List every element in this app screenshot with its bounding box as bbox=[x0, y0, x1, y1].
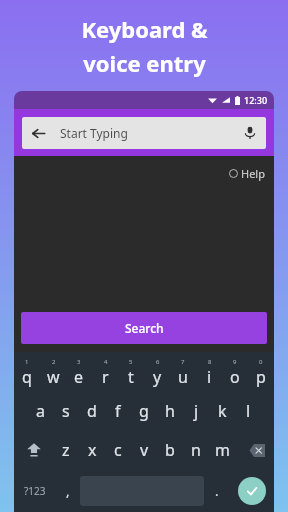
staticText: 3 bbox=[77, 358, 81, 366]
button[interactable]: v bbox=[131, 430, 157, 470]
staticText: k bbox=[218, 400, 227, 422]
button[interactable]: g bbox=[131, 392, 157, 430]
staticText: o bbox=[230, 366, 240, 388]
staticText: q bbox=[22, 366, 32, 388]
button[interactable]: d bbox=[79, 392, 105, 430]
button[interactable]: Voice search bbox=[234, 117, 266, 149]
staticText: l bbox=[246, 400, 251, 422]
button[interactable]: . bbox=[204, 470, 229, 512]
staticText: x bbox=[88, 439, 97, 461]
staticText: b bbox=[165, 439, 175, 461]
staticText: d bbox=[87, 400, 97, 422]
button[interactable]: 2 bbox=[40, 354, 66, 392]
button[interactable]: k bbox=[209, 392, 235, 430]
staticText: 8 bbox=[208, 358, 212, 366]
staticText: t bbox=[128, 366, 134, 388]
button[interactable]: s bbox=[53, 392, 79, 430]
staticText: Search bbox=[125, 320, 164, 336]
button[interactable]: 8 bbox=[196, 354, 222, 392]
button[interactable]: f bbox=[105, 392, 131, 430]
button[interactable]: Shift bbox=[14, 430, 53, 470]
staticText: . bbox=[215, 482, 219, 500]
button[interactable]: ?123 bbox=[14, 470, 55, 512]
staticText: , bbox=[66, 482, 70, 500]
button[interactable]: n bbox=[183, 430, 209, 470]
button[interactable]: Back bbox=[22, 117, 266, 149]
button[interactable]: Back bbox=[22, 117, 54, 149]
staticText: Start Typing bbox=[60, 125, 128, 141]
staticText: 0 bbox=[259, 358, 263, 366]
staticText: h bbox=[165, 400, 175, 422]
button[interactable]: 9 bbox=[222, 354, 248, 392]
staticText: c bbox=[114, 439, 122, 461]
staticText: 1 bbox=[25, 358, 29, 366]
staticText: 6 bbox=[156, 358, 160, 366]
staticText: Help bbox=[241, 166, 265, 181]
button[interactable]: Help bbox=[229, 166, 265, 181]
button[interactable]: x bbox=[79, 430, 105, 470]
button[interactable]: 1 bbox=[14, 354, 40, 392]
staticText: r bbox=[102, 366, 109, 388]
button[interactable]: Enter bbox=[238, 477, 266, 505]
staticText: a bbox=[36, 400, 45, 422]
staticText: 7 bbox=[181, 358, 185, 366]
button[interactable]: j bbox=[183, 392, 209, 430]
staticText: z bbox=[62, 439, 70, 461]
staticText: m bbox=[215, 439, 230, 461]
staticText: e bbox=[74, 366, 84, 388]
staticText: 4 bbox=[104, 358, 108, 366]
button[interactable]: b bbox=[157, 430, 183, 470]
button[interactable]: c bbox=[105, 430, 131, 470]
button[interactable]: a bbox=[27, 392, 53, 430]
button[interactable]: , bbox=[55, 470, 80, 512]
staticText: y bbox=[153, 366, 162, 388]
button[interactable]: Backspace bbox=[235, 430, 274, 470]
button[interactable]: 4 bbox=[92, 354, 118, 392]
staticText: j bbox=[194, 400, 199, 422]
staticText: u bbox=[178, 366, 188, 388]
button[interactable]: 7 bbox=[170, 354, 196, 392]
staticText: n bbox=[191, 439, 201, 461]
button[interactable]: h bbox=[157, 392, 183, 430]
staticText: s bbox=[62, 400, 70, 422]
button[interactable]: 3 bbox=[66, 354, 92, 392]
button[interactable]: 5 bbox=[118, 354, 144, 392]
button[interactable]: 6 bbox=[144, 354, 170, 392]
button[interactable]: 0 bbox=[248, 354, 274, 392]
staticText: i bbox=[207, 366, 212, 388]
staticText: f bbox=[115, 400, 121, 422]
staticText: w bbox=[47, 366, 60, 388]
button[interactable]: l bbox=[235, 392, 261, 430]
staticText: 5 bbox=[129, 358, 133, 366]
staticText: p bbox=[256, 366, 266, 388]
staticText: 2 bbox=[52, 358, 56, 366]
button[interactable]: z bbox=[53, 430, 79, 470]
staticText: Keyboard & bbox=[81, 14, 208, 44]
staticText: voice entry bbox=[83, 48, 206, 78]
staticText: 12:30 bbox=[244, 94, 268, 106]
staticText: 9 bbox=[233, 358, 237, 366]
button[interactable]: m bbox=[209, 430, 235, 470]
button[interactable]: Search bbox=[21, 312, 267, 344]
staticText: g bbox=[139, 400, 149, 422]
staticText: ?123 bbox=[24, 484, 46, 498]
staticText: v bbox=[140, 439, 149, 461]
